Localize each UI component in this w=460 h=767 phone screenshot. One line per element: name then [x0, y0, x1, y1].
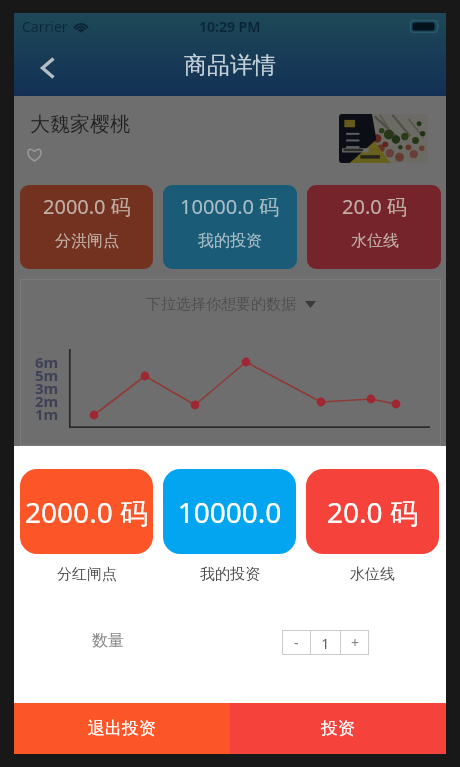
staticText: 下拉选择你想要的数据: [146, 295, 296, 314]
button[interactable]: Decrease quantity: [282, 630, 310, 655]
staticText: 退出投资: [88, 718, 156, 739]
staticText: 投资: [321, 718, 355, 739]
staticText: 20.0 码: [327, 493, 418, 531]
button[interactable]: 2000.0 码: [20, 185, 153, 269]
staticText: 10000.0 码: [163, 493, 296, 531]
staticText: 20.0 码: [342, 193, 407, 220]
staticText: 数量: [92, 631, 124, 651]
button[interactable]: Back: [26, 46, 70, 90]
staticText: 水位线: [350, 565, 395, 584]
button[interactable]: 下拉选择你想要的数据: [146, 295, 316, 314]
staticText: 我的投资: [200, 565, 260, 584]
staticText: -: [294, 633, 299, 652]
button[interactable]: 10000.0 码: [163, 185, 297, 269]
button[interactable]: 20.0 码: [307, 185, 441, 269]
staticText: 水位线: [351, 231, 399, 251]
staticText: +: [351, 633, 360, 652]
staticText: 2000.0 码: [25, 493, 148, 531]
staticText: Carrier: [22, 17, 68, 36]
staticText: 1: [321, 633, 330, 653]
staticText: 10000.0 码: [180, 193, 280, 220]
button[interactable]: 2000.0 码: [20, 469, 153, 554]
button[interactable]: 投资: [230, 703, 446, 754]
button[interactable]: Favourite: [27, 142, 51, 166]
staticText: 我的投资: [198, 231, 262, 251]
button[interactable]: 10000.0 码: [163, 469, 296, 554]
button[interactable]: Increase quantity: [341, 630, 369, 655]
staticText: 6m 5m 3m 2m 1m: [35, 352, 59, 425]
button[interactable]: 退出投资: [14, 703, 230, 754]
staticText: 大魏家樱桃: [30, 112, 130, 137]
staticText: 分洪闸点: [55, 231, 119, 251]
staticText: 分红闸点: [57, 565, 117, 584]
staticText: 2000.0 码: [43, 193, 131, 220]
staticText: 商品详情: [184, 51, 276, 80]
button[interactable]: 20.0 码: [306, 469, 439, 554]
staticText: 10:29 PM: [199, 17, 261, 36]
